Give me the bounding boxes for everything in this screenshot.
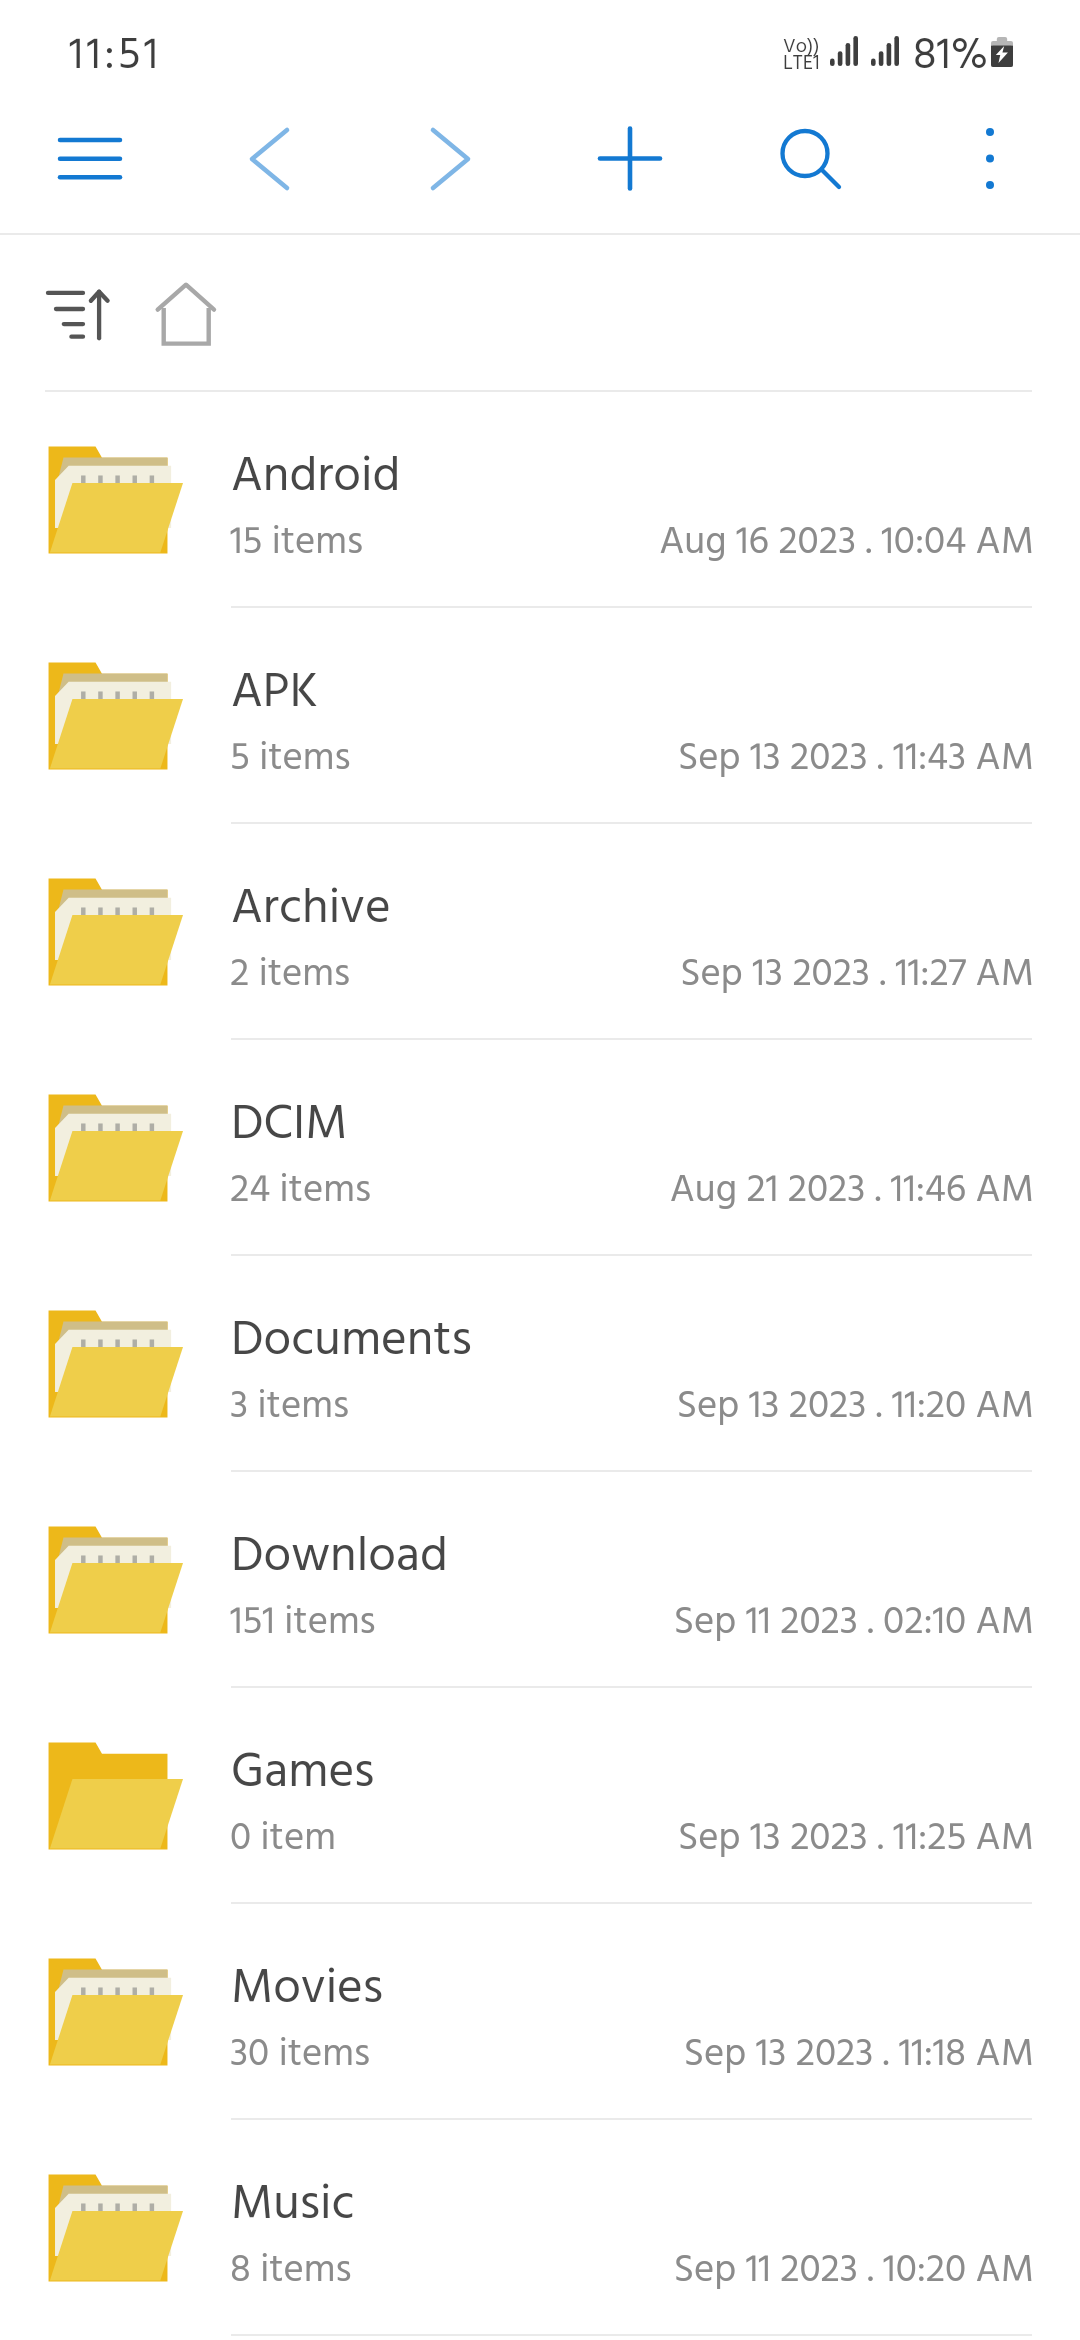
staticText: 15 items [230, 512, 364, 574]
button[interactable]: DCIM [0, 1040, 1080, 1256]
button[interactable]: Home [150, 278, 230, 358]
staticText: Download [231, 1518, 448, 1597]
button[interactable]: More options [940, 109, 1040, 209]
staticText: Sep 11 2023 . 10:20 AM [528, 2240, 1034, 2302]
staticText: 8 items [230, 2240, 352, 2302]
button[interactable]: Forward [400, 109, 500, 209]
staticText: 30 items [230, 2024, 370, 2086]
button[interactable]: Sort order [28, 266, 128, 366]
staticText: Games [231, 1734, 375, 1813]
button[interactable]: Games [0, 1688, 1080, 1904]
staticText: Sep 11 2023 . 02:10 AM [528, 1592, 1034, 1654]
staticText: Sep 13 2023 . 11:20 AM [528, 1376, 1034, 1438]
staticText: 11:51 [69, 22, 162, 92]
staticText: 0 item [230, 1808, 336, 1870]
staticText: LTE1 [783, 47, 820, 80]
staticText: 3 items [230, 1376, 349, 1438]
staticText: Movies [231, 1950, 384, 2029]
staticText: Sep 13 2023 . 11:43 AM [528, 728, 1034, 790]
staticText: Aug 21 2023 . 11:46 AM [528, 1160, 1034, 1222]
staticText: Sep 13 2023 . 11:25 AM [528, 1808, 1034, 1870]
button[interactable]: Music [0, 2120, 1080, 2336]
staticText: Documents [231, 1302, 472, 1381]
staticText: Archive [231, 870, 391, 949]
button[interactable]: Archive [0, 824, 1080, 1040]
staticText: 151 items [230, 1592, 376, 1654]
button[interactable]: Movies [0, 1904, 1080, 2120]
button[interactable]: Download [0, 1472, 1080, 1688]
staticText: 2 items [230, 944, 350, 1006]
staticText: Aug 16 2023 . 10:04 AM [528, 512, 1034, 574]
button[interactable]: Search [755, 109, 855, 209]
staticText: 81% [913, 22, 989, 92]
staticText: Sep 13 2023 . 11:27 AM [528, 944, 1034, 1006]
button[interactable]: Menu [40, 110, 140, 210]
staticText: Sep 13 2023 . 11:18 AM [528, 2024, 1034, 2086]
staticText: Android [231, 438, 401, 517]
button[interactable]: Back [202, 109, 302, 209]
staticText: APK [231, 654, 318, 733]
staticText: DCIM [231, 1086, 348, 1165]
button[interactable]: Documents [0, 1256, 1080, 1472]
button[interactable]: Android [0, 392, 1080, 608]
button[interactable]: APK [0, 608, 1080, 824]
staticText: Vo)) [783, 31, 820, 63]
staticText: 5 items [230, 728, 351, 790]
staticText: 24 items [230, 1160, 371, 1222]
button[interactable]: Add [580, 109, 680, 209]
staticText: Music [231, 2166, 355, 2245]
